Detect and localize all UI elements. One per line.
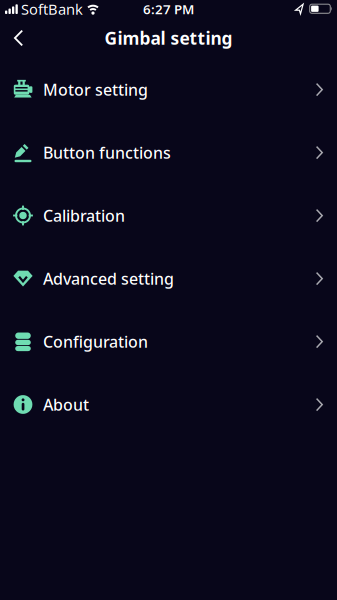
staticText: Gimbal setting	[104, 26, 232, 49]
staticText: About	[43, 394, 89, 415]
staticText: Calibration	[43, 205, 125, 226]
button[interactable]: Button functions	[0, 121, 337, 184]
button[interactable]: Configuration	[0, 310, 337, 373]
button[interactable]: Advanced setting	[0, 247, 337, 310]
staticText: Advanced setting	[43, 268, 174, 289]
button[interactable]: About	[0, 373, 337, 436]
staticText: Configuration	[43, 331, 148, 352]
button[interactable]: Motor setting	[0, 58, 337, 121]
staticText: Motor setting	[43, 79, 148, 100]
staticText: Button functions	[43, 142, 171, 163]
staticText: SoftBank	[21, 0, 83, 19]
button[interactable]: Calibration	[0, 184, 337, 247]
staticText: 6:27 PM	[143, 0, 194, 18]
button[interactable]: Back	[0, 18, 23, 58]
